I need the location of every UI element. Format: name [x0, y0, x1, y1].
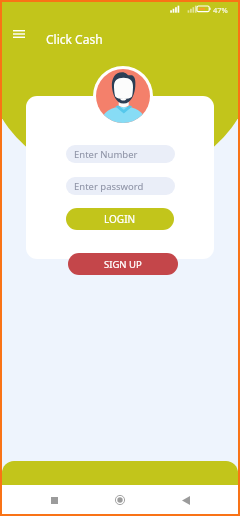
staticText: Enter Number	[74, 148, 138, 161]
button[interactable]: Open navigation menu	[7, 22, 31, 46]
button[interactable]: Back	[172, 486, 200, 514]
staticText: Enter password	[74, 180, 144, 193]
staticText: 47%	[213, 5, 228, 15]
staticText: LOGIN	[104, 212, 136, 226]
button[interactable]: Enter password	[66, 177, 175, 195]
button[interactable]: LOGIN	[66, 208, 174, 230]
staticText: Click Cash	[46, 31, 103, 47]
button[interactable]: Recent apps	[40, 486, 68, 514]
button[interactable]: SIGN UP	[68, 253, 178, 275]
button[interactable]: Enter Number	[66, 145, 175, 163]
button[interactable]: Home	[106, 486, 134, 514]
staticText: SIGN UP	[104, 258, 142, 271]
